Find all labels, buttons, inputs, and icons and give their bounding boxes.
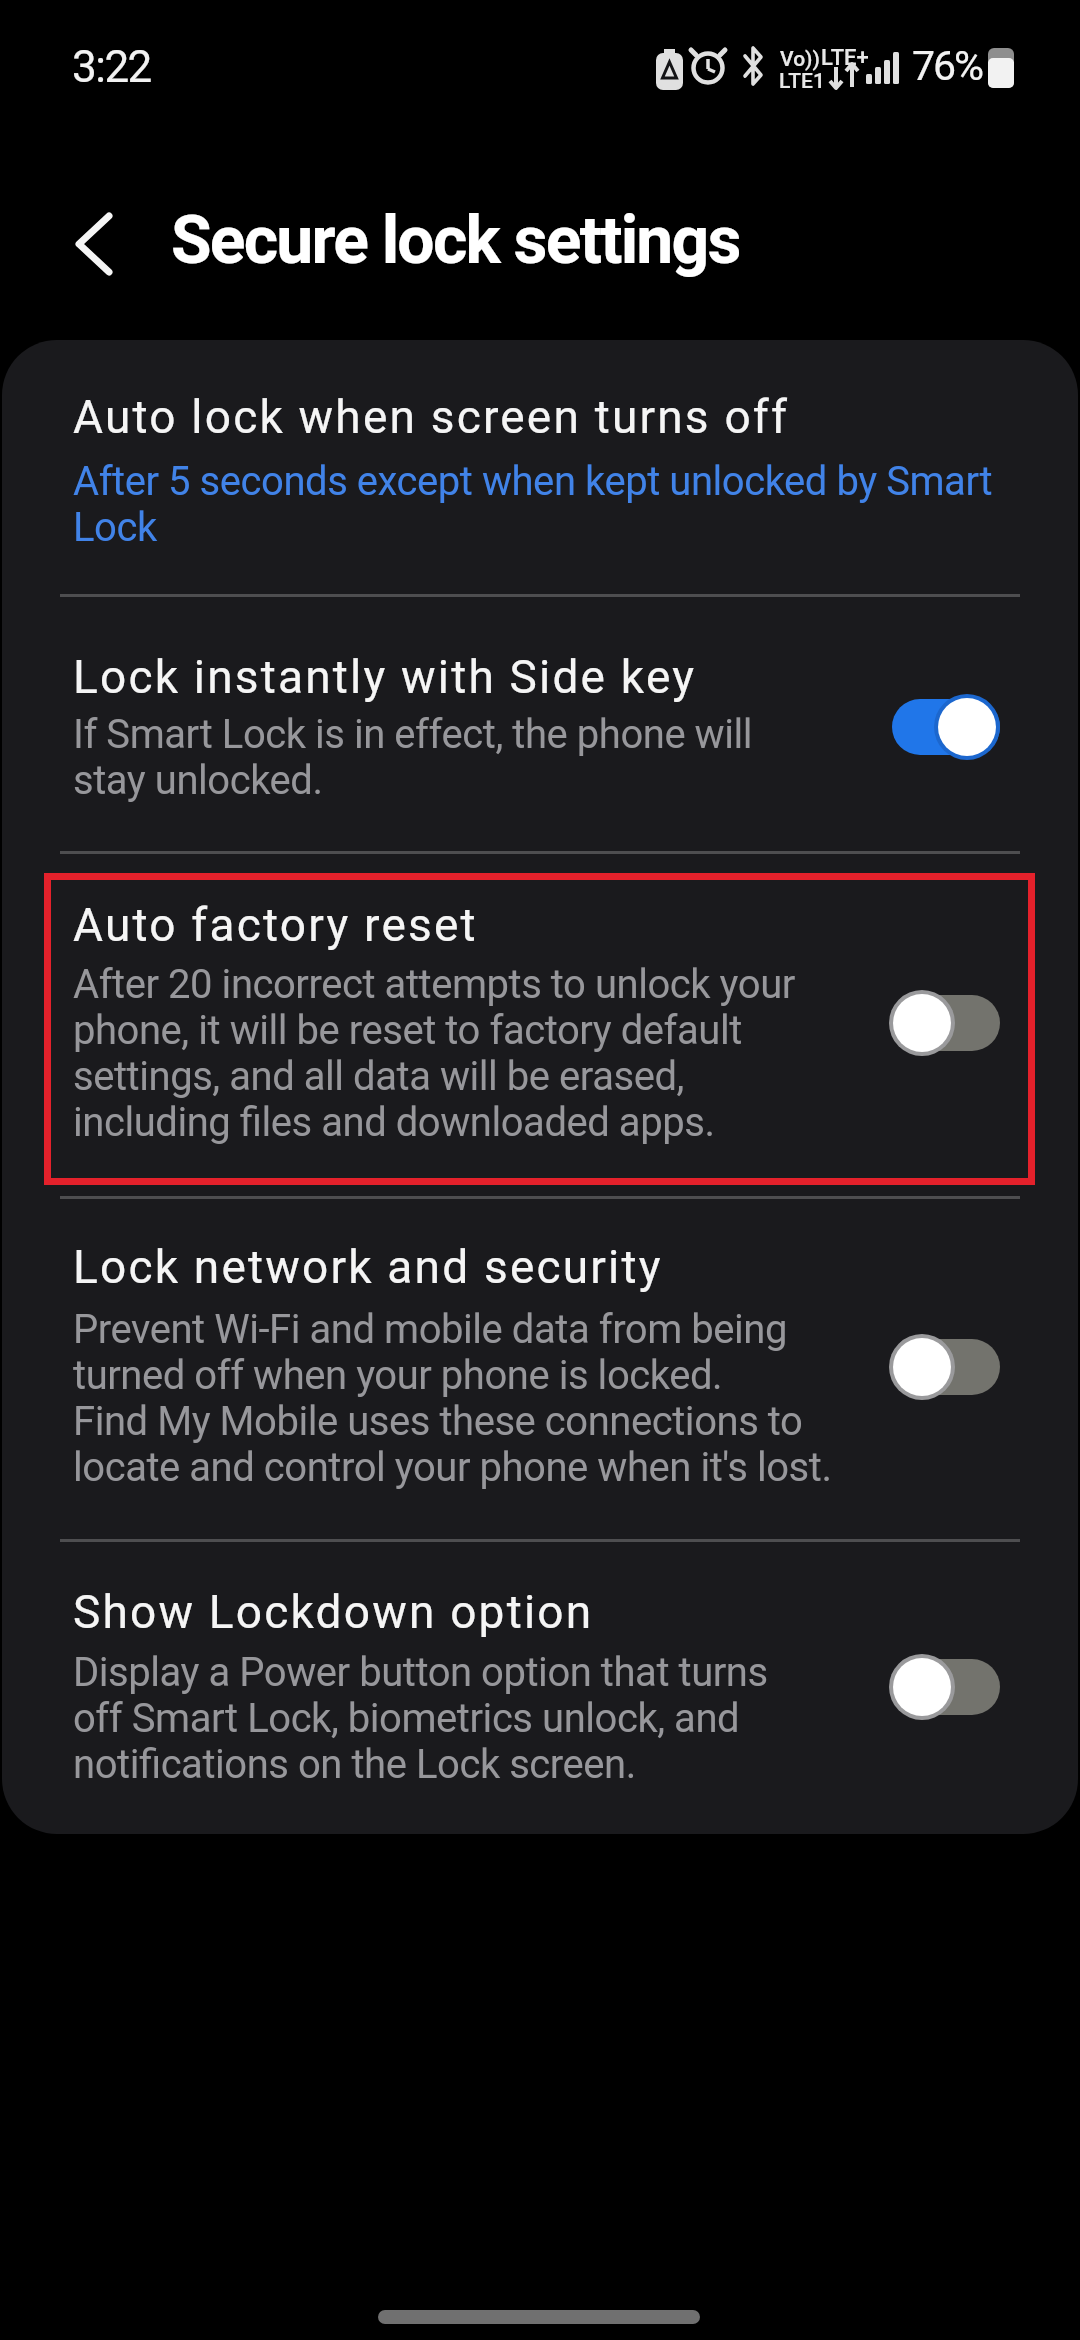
button[interactable]: Lock network and security (2, 1197, 1078, 1540)
button[interactable] (888, 1332, 1004, 1402)
staticText: Show Lockdown option (73, 1585, 594, 1639)
staticText: Auto lock when screen turns off (73, 390, 790, 444)
staticText: Auto factory reset (73, 898, 478, 952)
staticText: After 20 incorrect attempts to unlock yo… (73, 961, 795, 1146)
staticText: Vo)) (780, 47, 820, 72)
button[interactable]: Auto factory reset (2, 852, 1078, 1197)
staticText: Lock instantly with Side key (73, 650, 697, 704)
staticText: LTE+ (821, 45, 869, 71)
staticText: Prevent Wi-Fi and mobile data from being… (73, 1306, 832, 1491)
staticText: Display a Power button option that turns… (73, 1649, 768, 1788)
button[interactable]: Show Lockdown option (2, 1540, 1078, 1834)
button[interactable]: Auto lock when screen turns off (2, 340, 1078, 595)
button[interactable] (60, 200, 150, 290)
button[interactable]: Lock instantly with Side key (2, 595, 1078, 852)
staticText: Lock network and security (73, 1240, 663, 1294)
button[interactable] (888, 988, 1004, 1058)
button[interactable] (888, 692, 1004, 762)
staticText: Secure lock settings (171, 202, 740, 279)
staticText: If Smart Lock is in effect, the phone wi… (73, 711, 753, 804)
button[interactable] (378, 2310, 700, 2324)
staticText: 76% (912, 42, 983, 90)
staticText: LTE1 (779, 69, 825, 94)
staticText: After 5 seconds except when kept unlocke… (73, 458, 993, 551)
staticText: 3:22 (72, 41, 151, 93)
button[interactable] (888, 1652, 1004, 1722)
